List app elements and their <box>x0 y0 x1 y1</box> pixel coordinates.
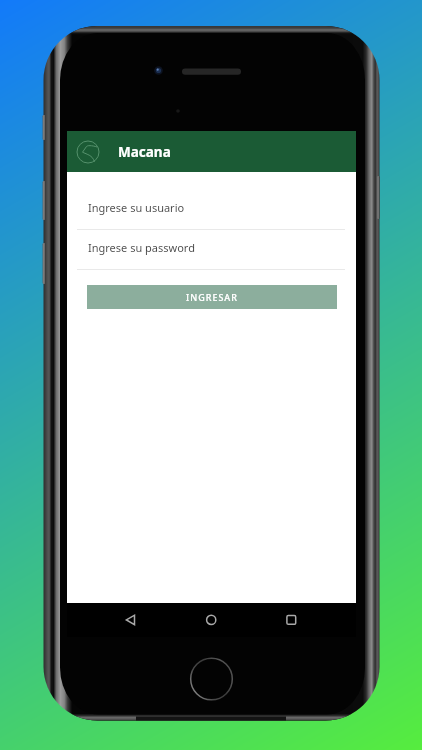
staticText: INGRESAR <box>186 291 238 303</box>
button[interactable]: INGRESAR <box>87 285 337 309</box>
staticText: Ingrese su usuario <box>88 200 185 215</box>
staticText: Ingrese su password <box>88 240 195 255</box>
staticText: Macana <box>118 143 171 161</box>
button[interactable]: Macana logo <box>72 136 104 168</box>
